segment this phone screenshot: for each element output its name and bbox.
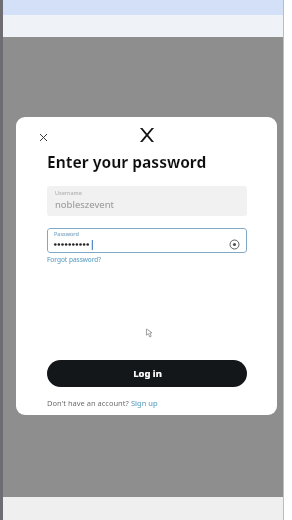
staticText: Enter your password: [47, 151, 207, 172]
button[interactable]: Sign up: [131, 398, 158, 408]
button[interactable]: Log in: [47, 360, 247, 387]
button[interactable]: Forgot password?: [46, 254, 103, 265]
staticText: nobleszevent: [55, 198, 114, 211]
staticText: Don't have an account?: [47, 398, 131, 408]
button[interactable]: Show password: [226, 236, 242, 252]
staticText: Username: [55, 189, 82, 196]
button[interactable]: Close: [32, 126, 54, 148]
button[interactable]: Username: [47, 186, 247, 216]
button[interactable]: Password: [47, 228, 247, 253]
staticText: Forgot password?: [47, 255, 102, 264]
staticText: Log in: [133, 367, 162, 380]
staticText: Sign up: [131, 398, 158, 408]
staticText: Password: [54, 230, 79, 237]
